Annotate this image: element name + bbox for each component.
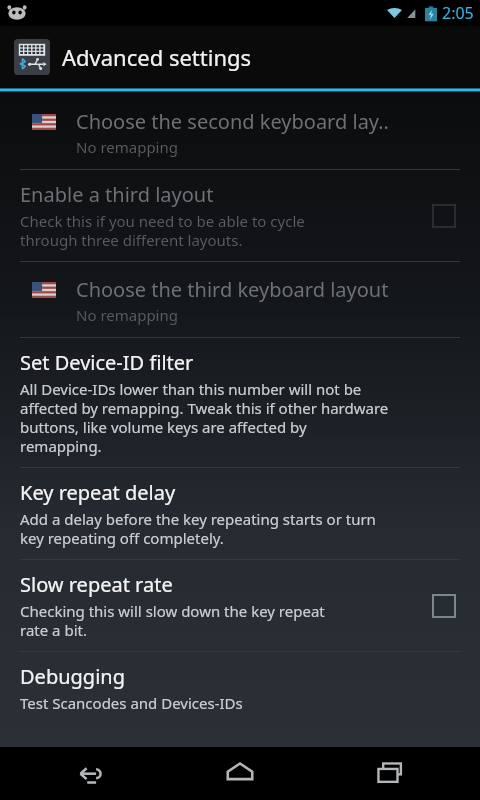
- staticText: Test Scancodes and Devices-IDs: [20, 693, 243, 713]
- staticText: Choose the third keyboard layout: [76, 276, 389, 303]
- staticText: Key repeat delay: [20, 479, 176, 506]
- button[interactable]: Key repeat delay: [0, 468, 480, 559]
- button[interactable]: Set Device-ID filter: [0, 338, 480, 467]
- staticText: Add a delay before the key repeating sta…: [20, 509, 376, 548]
- button[interactable]: Choose the second keyboard lay..: [0, 92, 480, 169]
- staticText: Checking this will slow down the key rep…: [20, 601, 325, 640]
- button[interactable]: Advanced settings: [0, 26, 480, 88]
- button[interactable]: Recent apps: [330, 747, 450, 799]
- staticText: No remapping: [76, 137, 178, 157]
- staticText: Slow repeat rate: [20, 571, 173, 598]
- button[interactable]: Choose the third keyboard layout: [0, 262, 480, 337]
- button[interactable]: Enable a third layout: [0, 170, 480, 261]
- button[interactable]: Back: [30, 747, 150, 799]
- button[interactable]: Slow repeat rate: [0, 560, 480, 651]
- staticText: All Device-IDs lower than this number wi…: [20, 379, 389, 456]
- staticText: Enable a third layout: [20, 181, 214, 208]
- staticText: 2:05: [442, 2, 474, 24]
- staticText: No remapping: [76, 305, 178, 325]
- staticText: Choose the second keyboard lay..: [76, 108, 389, 135]
- staticText: Check this if you need to be able to cyc…: [20, 211, 305, 250]
- button[interactable]: Slow repeat rate checkbox: [422, 584, 466, 628]
- button[interactable]: Debugging: [0, 652, 480, 724]
- staticText: Set Device-ID filter: [20, 349, 194, 376]
- button[interactable]: Home: [180, 747, 300, 799]
- staticText: Advanced settings: [62, 42, 252, 72]
- staticText: Debugging: [20, 663, 125, 690]
- button[interactable]: Enable a third layout checkbox: [422, 194, 466, 238]
